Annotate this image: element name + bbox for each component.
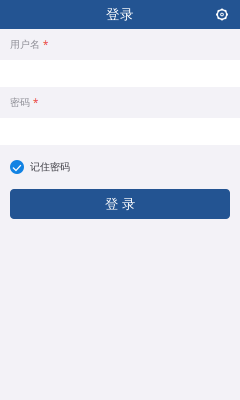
staticText: * [43,38,48,51]
staticText: * [33,96,38,109]
staticText: 记住密码 [30,161,70,173]
button[interactable]: Settings [210,2,234,26]
staticText: 登录 [106,6,134,23]
staticText: 登 录 [105,196,135,212]
staticText: 用户名 [10,38,40,51]
button[interactable]: 登 录 [10,189,230,219]
button[interactable]: 记住密码 [0,145,240,189]
staticText: 密码 [10,96,30,109]
